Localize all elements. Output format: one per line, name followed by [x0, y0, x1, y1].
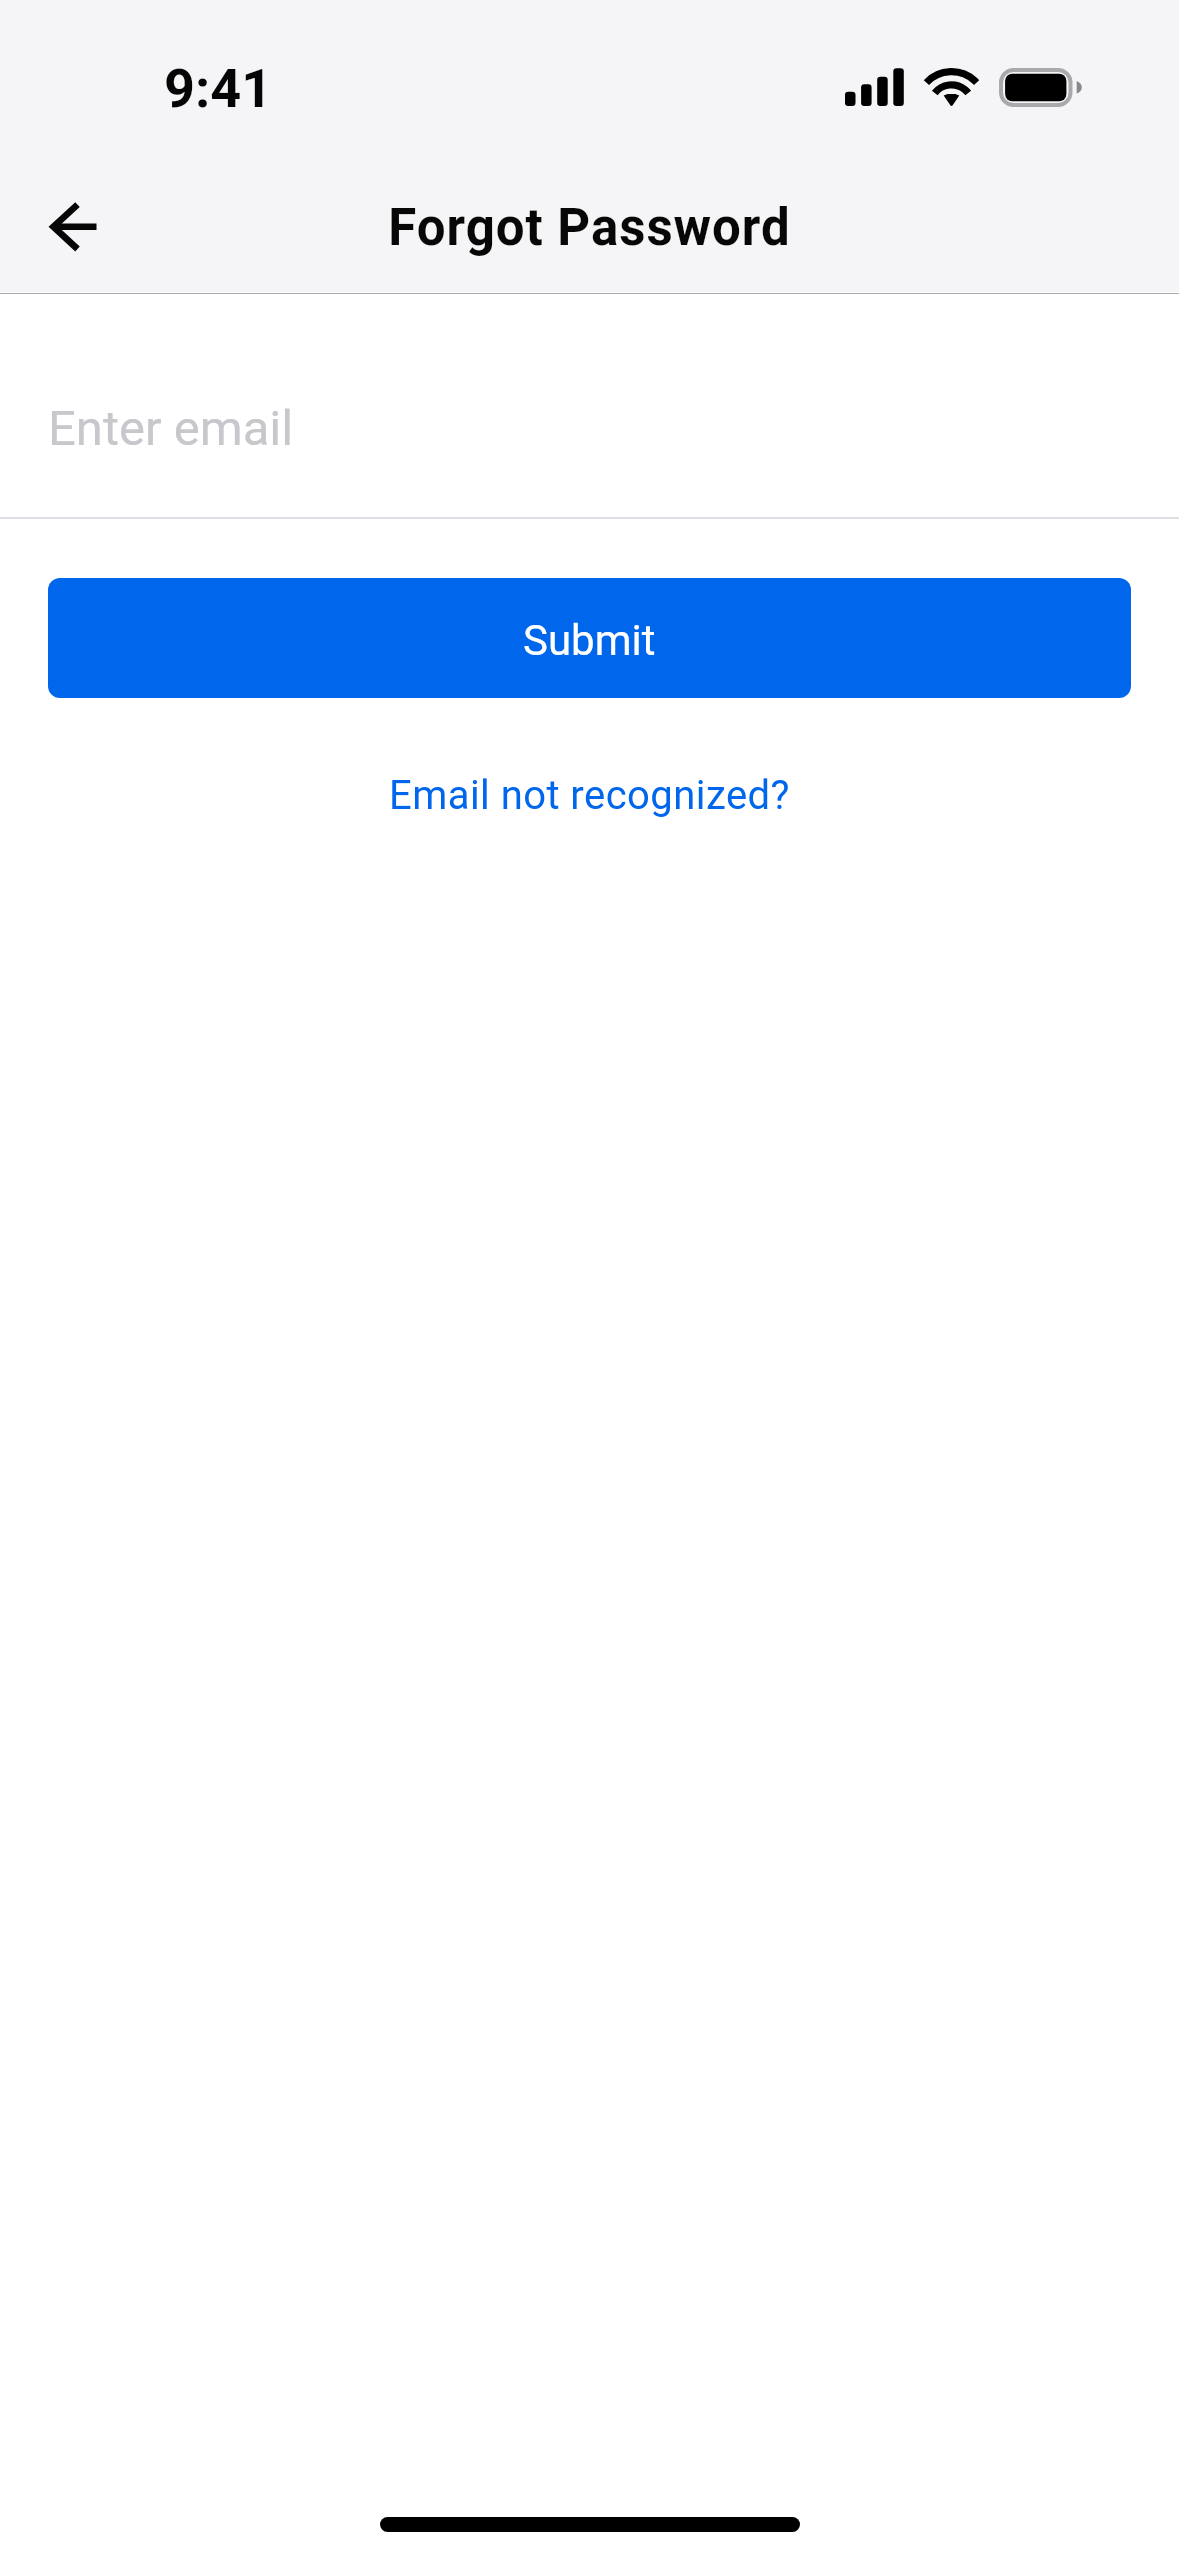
button[interactable]: Back [0, 160, 144, 292]
staticText: Forgot Password [388, 198, 791, 258]
staticText: Enter email [48, 400, 294, 457]
button[interactable]: Submit [48, 578, 1131, 698]
button[interactable]: Email not recognized? [369, 760, 810, 831]
button[interactable]: Enter email [0, 293, 1179, 517]
staticText: 9:41 [164, 57, 273, 120]
staticText: Submit [523, 616, 656, 665]
